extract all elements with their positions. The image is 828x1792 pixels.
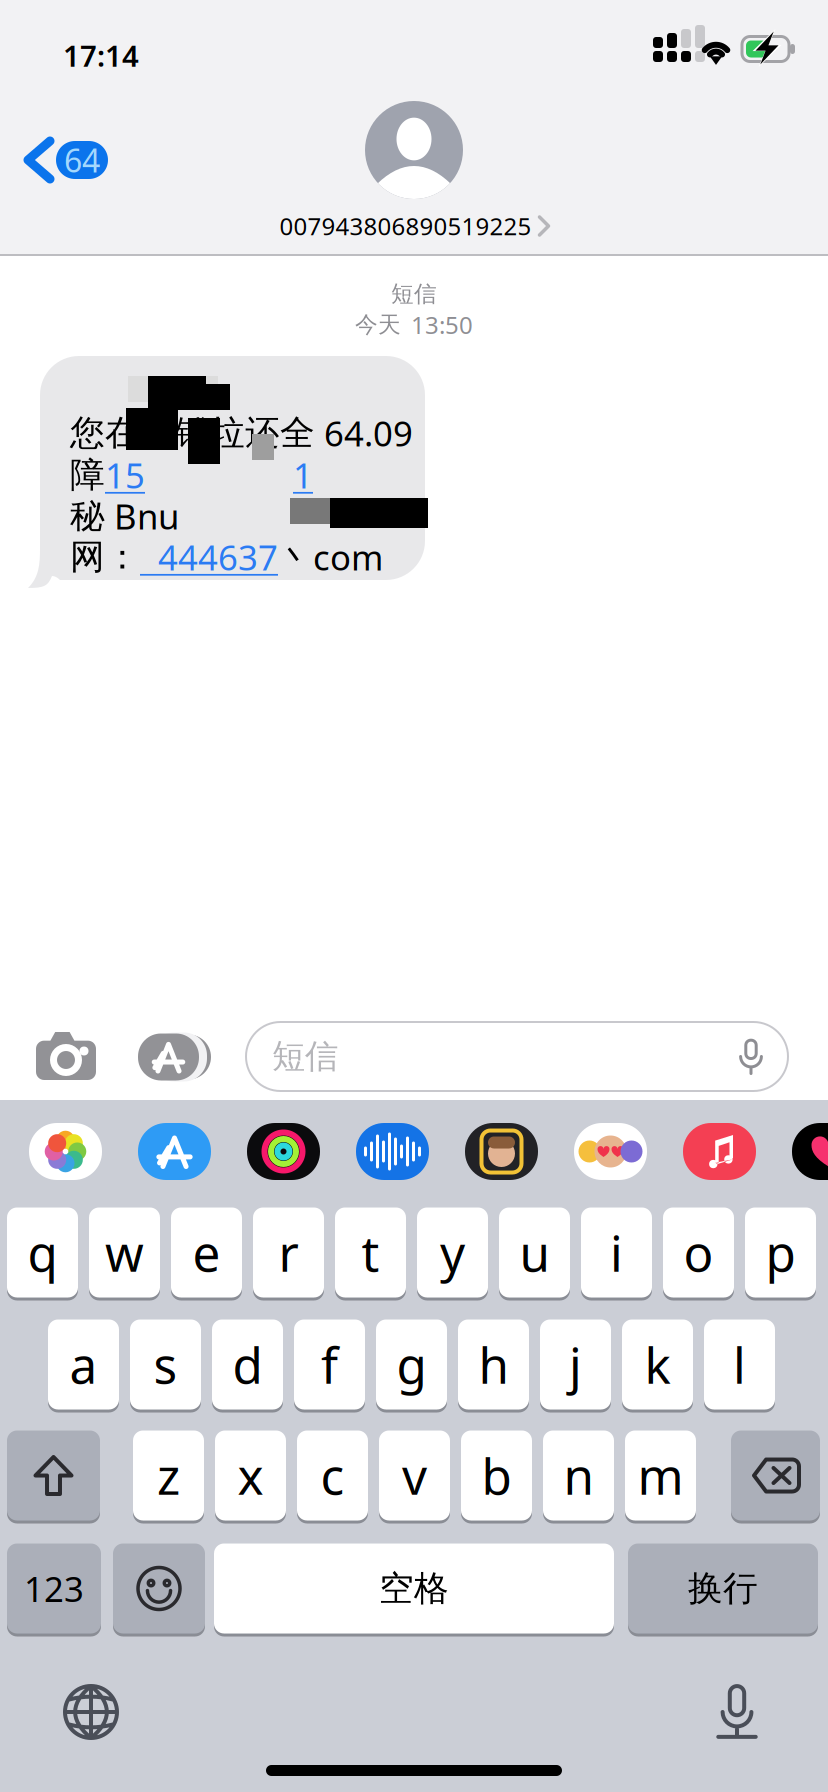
staticText: 您在嘀铺垃还全 [70, 412, 315, 454]
staticText: 123 [24, 1565, 84, 1611]
button[interactable]: w [89, 1206, 160, 1299]
button[interactable]: v [379, 1429, 450, 1522]
staticText: w [105, 1220, 144, 1285]
button[interactable] [683, 1123, 756, 1180]
staticText: h [478, 1332, 508, 1397]
button[interactable] [29, 1123, 102, 1180]
staticText: 13:50 [411, 309, 473, 341]
button[interactable] [247, 1123, 320, 1180]
button[interactable] [465, 1123, 538, 1180]
staticText: 短信 [391, 280, 437, 308]
button[interactable] [731, 1429, 820, 1522]
button[interactable]: 007943806890519225 [279, 207, 548, 245]
button[interactable]: n [543, 1429, 614, 1522]
staticText: v [402, 1443, 427, 1508]
staticText: 64 [64, 139, 100, 181]
staticText: r [278, 1220, 298, 1285]
staticText: c [320, 1443, 344, 1508]
staticText: 15 [105, 452, 145, 498]
button[interactable]: i [581, 1206, 652, 1299]
staticText: n [563, 1443, 593, 1508]
staticText: q [27, 1220, 57, 1285]
staticText: l [733, 1332, 746, 1397]
button[interactable]: b [461, 1429, 532, 1522]
button[interactable]: j [540, 1318, 611, 1411]
staticText: i [610, 1220, 623, 1285]
staticText: x [237, 1443, 263, 1508]
staticText: 换行 [688, 1567, 758, 1610]
staticText: s [153, 1332, 177, 1397]
staticText: 网： [70, 536, 140, 578]
button[interactable]: g [376, 1318, 447, 1411]
staticText: f [321, 1332, 338, 1397]
button[interactable]: x [215, 1429, 286, 1522]
staticText: y [440, 1220, 465, 1285]
staticText: Bnu [105, 493, 179, 539]
staticText: m [637, 1443, 683, 1508]
button[interactable]: m [625, 1429, 696, 1522]
staticText: 障 [70, 454, 105, 496]
staticText: z [157, 1443, 180, 1508]
staticText: 空格 [379, 1567, 449, 1610]
staticText: j [569, 1332, 582, 1397]
button[interactable]: h [458, 1318, 529, 1411]
button[interactable]: Camera [36, 1031, 96, 1081]
staticText: e [192, 1220, 220, 1285]
staticText: 1 [293, 452, 313, 498]
button[interactable]: c [297, 1429, 368, 1522]
button[interactable] [7, 1429, 100, 1522]
button[interactable]: Dictation [695, 1676, 779, 1748]
button[interactable]: l [704, 1318, 775, 1411]
button[interactable] [113, 1542, 205, 1635]
button[interactable]: p [745, 1206, 816, 1299]
staticText: g [396, 1332, 426, 1397]
button[interactable]: e [171, 1206, 242, 1299]
staticText: b [481, 1443, 511, 1508]
button[interactable] [356, 1123, 429, 1180]
staticText: k [644, 1332, 670, 1397]
button[interactable]: q [7, 1206, 78, 1299]
staticText: 17:14 [63, 36, 139, 75]
staticText: u [519, 1220, 549, 1285]
staticText: 秘 [70, 495, 105, 537]
button[interactable]: y [417, 1206, 488, 1299]
button[interactable]: 123 [7, 1542, 101, 1635]
button[interactable]: Next keyboard [49, 1676, 133, 1748]
staticText: 今天 [355, 311, 401, 339]
button[interactable]: a [48, 1318, 119, 1411]
staticText: 短信 [272, 1036, 338, 1077]
button[interactable]: s [130, 1318, 201, 1411]
staticText: p [765, 1220, 795, 1285]
button[interactable] [792, 1123, 828, 1180]
button[interactable]: d [212, 1318, 283, 1411]
button[interactable]: o [663, 1206, 734, 1299]
button[interactable]: Dictation [722, 1027, 780, 1085]
staticText: a [69, 1332, 97, 1397]
button[interactable]: z [133, 1429, 204, 1522]
button[interactable]: r [253, 1206, 324, 1299]
button[interactable] [574, 1123, 647, 1180]
button[interactable]: 空格 [214, 1542, 614, 1635]
button[interactable] [138, 1123, 211, 1180]
button[interactable]: k [622, 1318, 693, 1411]
staticText: 007943806890519225 [279, 210, 531, 242]
staticText: 64.09 [315, 410, 413, 456]
button[interactable]: t [335, 1206, 406, 1299]
staticText: o [683, 1220, 713, 1285]
staticText: 444637 [140, 534, 278, 580]
button[interactable]: u [499, 1206, 570, 1299]
button[interactable]: 64 [28, 129, 168, 191]
button[interactable]: Apps [138, 1032, 214, 1082]
staticText: t [361, 1220, 379, 1285]
staticText: 丶com [278, 534, 383, 580]
staticText: d [232, 1332, 262, 1397]
button[interactable]: f [294, 1318, 365, 1411]
button[interactable]: 换行 [628, 1542, 818, 1635]
